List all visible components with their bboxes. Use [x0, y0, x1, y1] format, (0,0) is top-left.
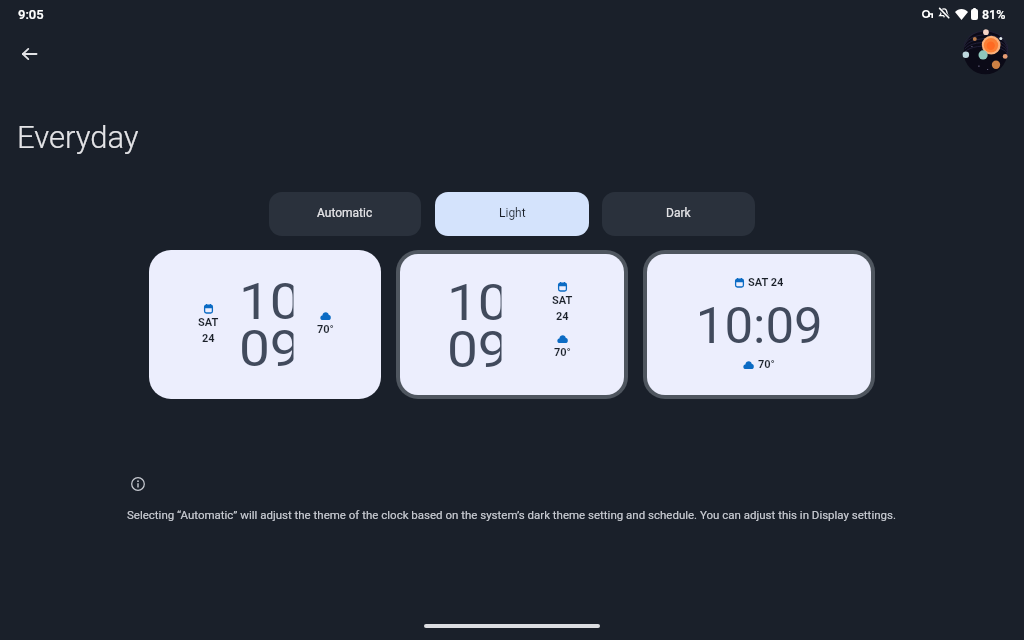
staticText: 10 [238, 273, 293, 332]
staticText: Everyday [17, 119, 139, 155]
staticText: 9:05 [18, 7, 44, 22]
button[interactable]: Light [435, 192, 589, 236]
staticText: Light [499, 206, 526, 220]
staticText: SAT 24 [748, 276, 784, 289]
staticText: SAT [552, 294, 573, 307]
staticText: 81% [982, 7, 1006, 22]
button[interactable]: 10 [400, 254, 624, 395]
button[interactable]: SAT 24 [647, 254, 871, 395]
staticText: 24 [202, 332, 215, 345]
button[interactable]: Automatic [269, 192, 421, 236]
staticText: Automatic [317, 206, 373, 220]
staticText: 70° [317, 323, 334, 336]
staticText: 09 [238, 320, 293, 379]
button[interactable]: Info [131, 477, 145, 491]
staticText: Selecting “Automatic” will adjust the th… [127, 508, 896, 521]
button[interactable]: Dark [602, 192, 755, 236]
staticText: 10:09 [696, 297, 823, 356]
staticText: 70° [758, 358, 775, 371]
button[interactable]: SAT [149, 250, 381, 399]
button[interactable]: Account [962, 29, 1009, 76]
staticText: 70° [554, 346, 571, 359]
staticText: Dark [666, 206, 691, 220]
staticText: 24 [556, 310, 569, 323]
staticText: SAT [198, 316, 219, 329]
staticText: 09 [446, 321, 501, 380]
button[interactable]: Back [9, 34, 49, 74]
staticText: 10 [446, 274, 501, 333]
